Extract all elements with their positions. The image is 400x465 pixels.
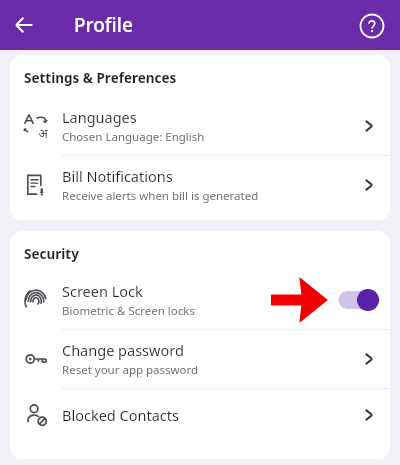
button[interactable]: Screen Lock toggle <box>328 278 390 322</box>
staticText: अ <box>38 125 48 141</box>
staticText: Reset your app password <box>62 362 199 378</box>
button[interactable]: Blocked Contacts <box>10 389 390 441</box>
button[interactable]: Back <box>10 11 38 39</box>
button[interactable]: Bill Notifications <box>10 156 390 214</box>
staticText: Bill Notifications <box>62 166 173 186</box>
staticText: Chosen Language: English <box>62 129 205 145</box>
staticText: Screen Lock <box>62 281 143 301</box>
staticText: Receive alerts when bill is generated <box>62 188 259 204</box>
staticText: Languages <box>62 107 137 127</box>
button[interactable]: Help <box>357 11 387 41</box>
staticText: Blocked Contacts <box>62 405 179 425</box>
staticText: Security <box>24 245 79 263</box>
staticText: Settings & Preferences <box>24 69 177 87</box>
staticText: Profile <box>74 12 133 38</box>
button[interactable]: अ <box>10 97 390 155</box>
button[interactable]: Change password <box>10 330 390 388</box>
staticText: Change password <box>62 340 184 360</box>
staticText: Biometric & Screen locks <box>62 303 195 319</box>
